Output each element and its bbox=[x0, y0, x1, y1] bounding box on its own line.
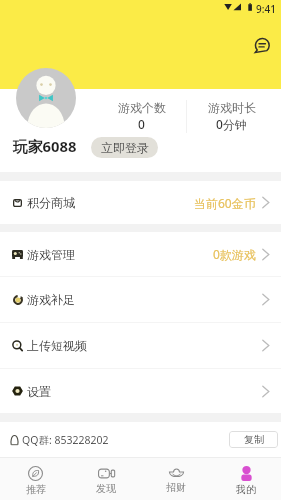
staticText: 设置 bbox=[27, 384, 51, 399]
button[interactable]: Messages bbox=[247, 31, 277, 61]
staticText: 复制 bbox=[244, 433, 264, 446]
staticText: 招财 bbox=[166, 481, 186, 494]
button[interactable]: 我的 bbox=[211, 461, 281, 500]
button[interactable]: 上传短视频 bbox=[0, 323, 281, 368]
staticText: 我的 bbox=[236, 483, 256, 496]
staticText: QQ群: 853228202 bbox=[22, 433, 109, 447]
staticText: 游戏管理 bbox=[27, 247, 75, 262]
staticText: 0 bbox=[138, 116, 145, 132]
staticText: 当前60金币 bbox=[194, 195, 256, 211]
staticText: 上传短视频 bbox=[27, 338, 87, 353]
staticText: 积分商城 bbox=[27, 195, 75, 210]
button[interactable]: 发现 bbox=[71, 461, 141, 500]
staticText: 0款游戏 bbox=[213, 246, 256, 262]
button[interactable]: 游戏管理 bbox=[0, 232, 281, 276]
staticText: 0分钟 bbox=[216, 116, 247, 132]
staticText: 推荐 bbox=[26, 483, 46, 496]
button[interactable]: 积分商城 bbox=[0, 181, 281, 224]
button[interactable]: 设置 bbox=[0, 369, 281, 413]
button[interactable]: 招财 bbox=[141, 461, 211, 500]
button[interactable]: 推荐 bbox=[0, 461, 71, 500]
staticText: 立即登录 bbox=[101, 140, 149, 155]
staticText: 9:41 bbox=[256, 2, 276, 16]
staticText: 游戏补足 bbox=[27, 292, 75, 307]
staticText: 游戏时长 bbox=[208, 100, 256, 115]
staticText: 发现 bbox=[96, 482, 116, 495]
staticText: 玩家6088 bbox=[13, 136, 77, 156]
button[interactable]: 立即登录 bbox=[91, 137, 158, 158]
button[interactable]: 复制 bbox=[229, 431, 278, 448]
button[interactable]: 游戏补足 bbox=[0, 277, 281, 322]
staticText: 游戏个数 bbox=[118, 100, 166, 115]
